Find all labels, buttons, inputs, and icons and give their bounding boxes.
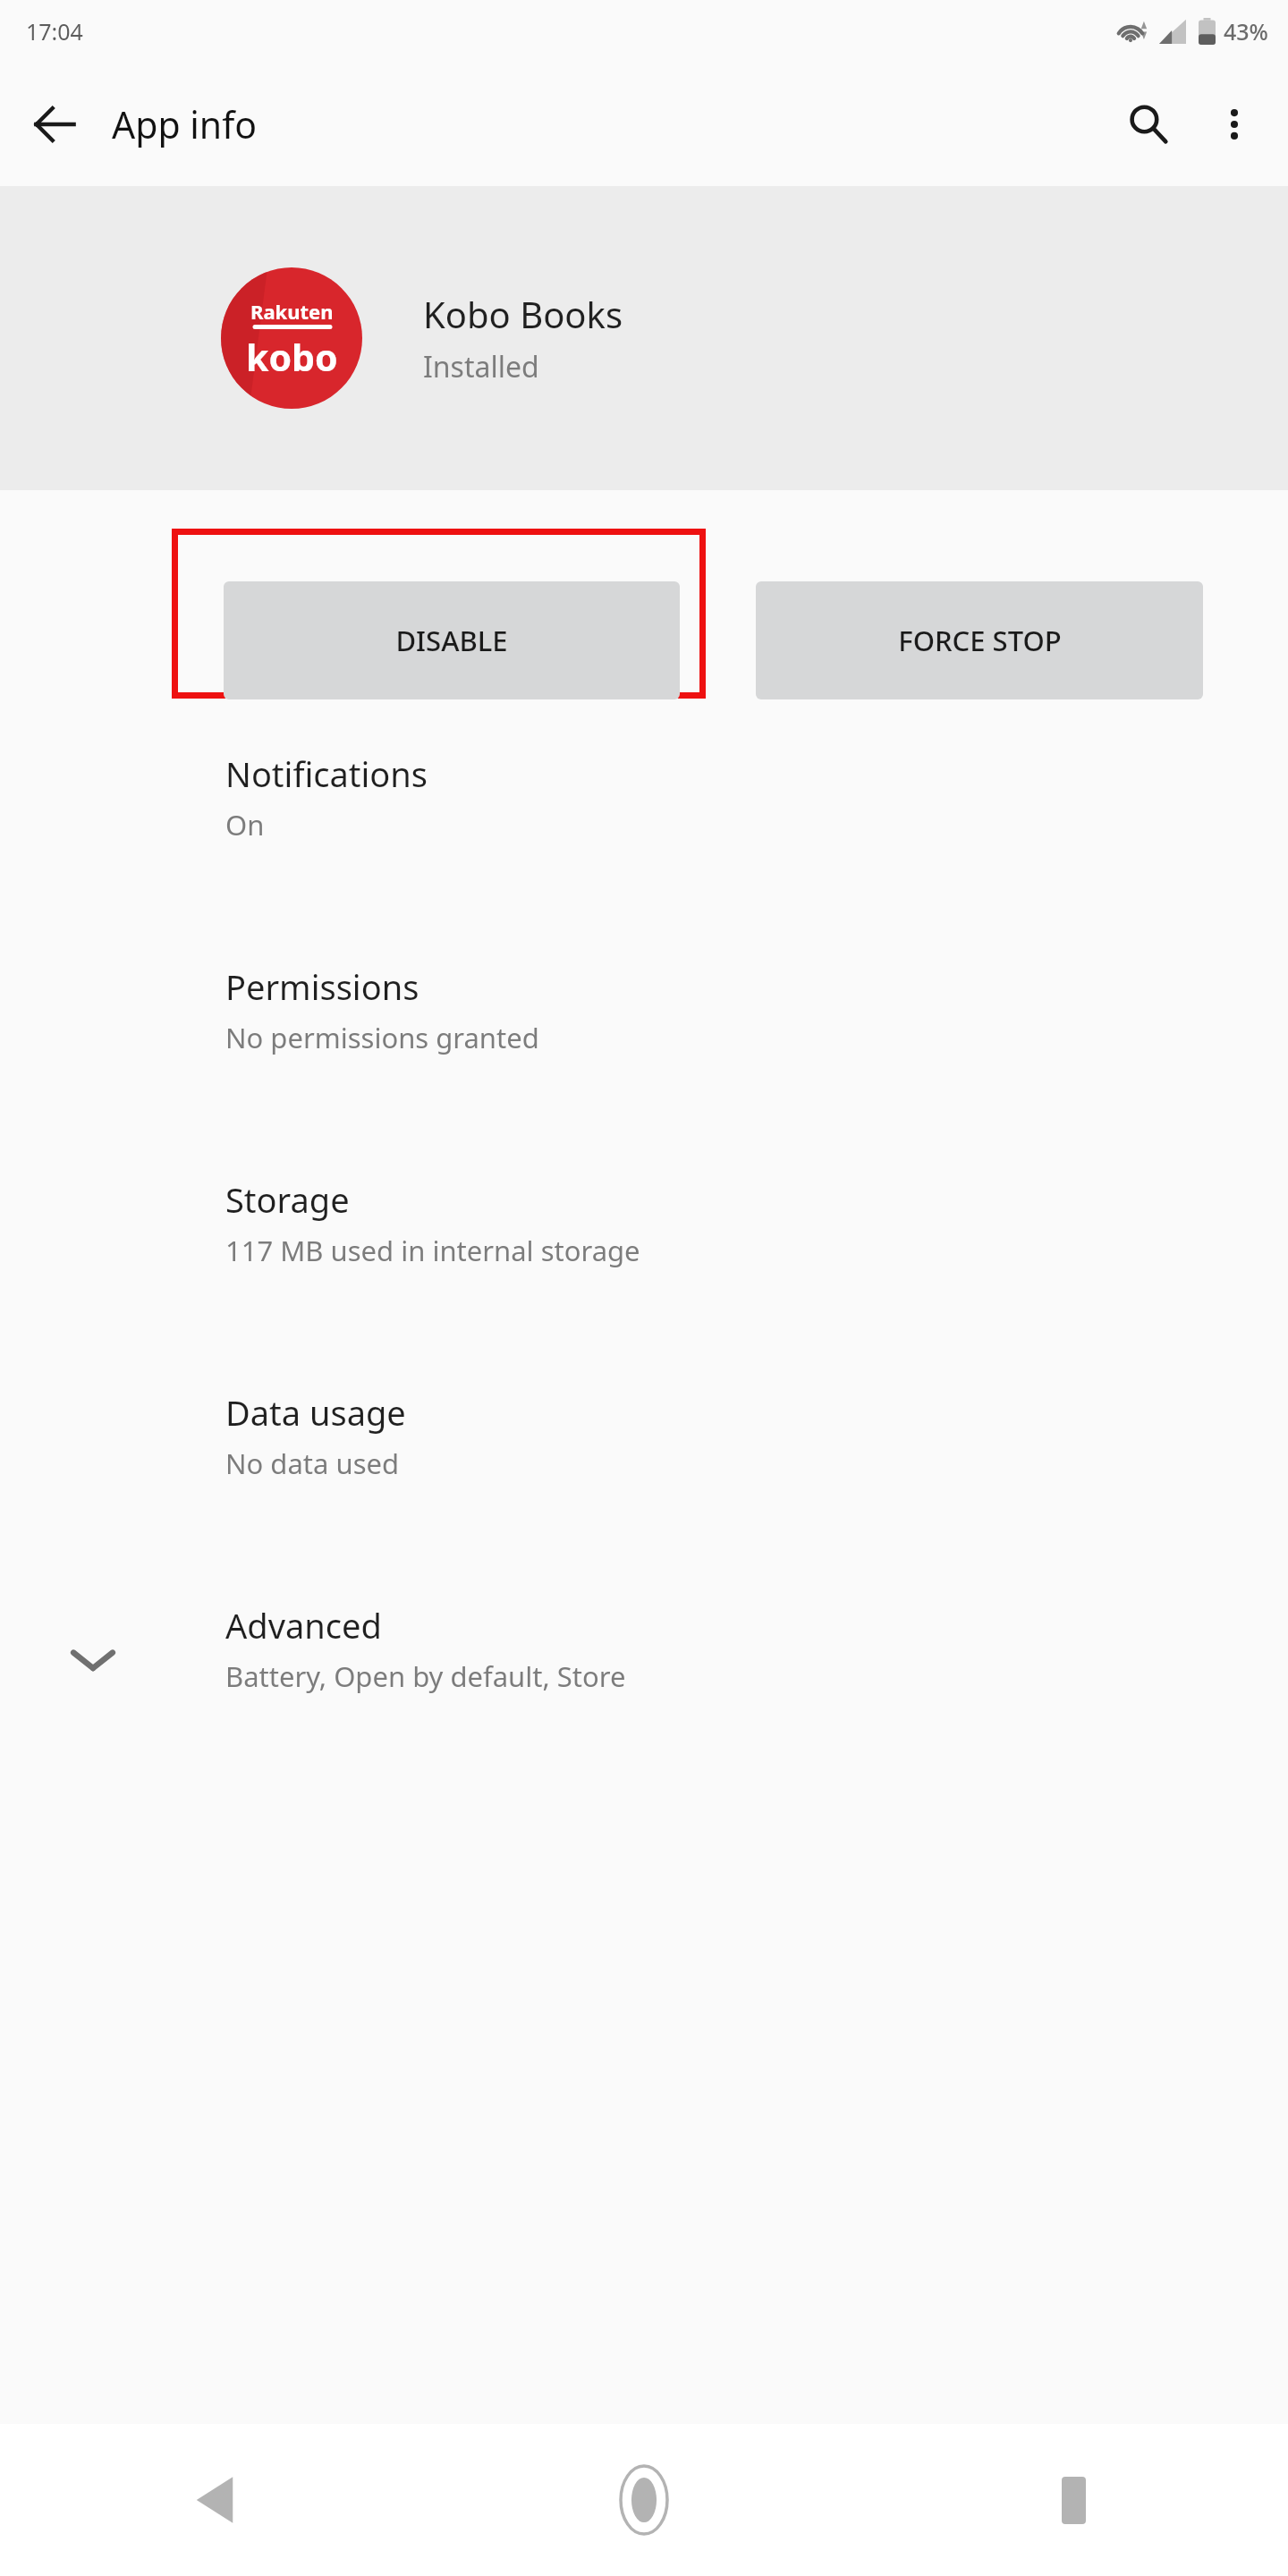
staticText: On bbox=[225, 806, 265, 843]
button[interactable]: Back bbox=[15, 85, 94, 164]
staticText: App info bbox=[112, 99, 258, 149]
staticText: Permissions bbox=[225, 963, 419, 1010]
staticText: Battery, Open by default, Store bbox=[225, 1657, 626, 1695]
staticText: DISABLE bbox=[395, 622, 508, 659]
button[interactable]: Search bbox=[1106, 81, 1191, 167]
button[interactable]: Rakuten bbox=[0, 186, 1288, 490]
button[interactable]: Data usage bbox=[0, 1357, 1288, 1570]
button[interactable]: DISABLE bbox=[224, 581, 680, 699]
staticText: Notifications bbox=[225, 750, 428, 797]
button[interactable]: Recent apps bbox=[1006, 2433, 1140, 2567]
staticText: 117 MB used in internal storage bbox=[225, 1232, 640, 1269]
button[interactable]: Home bbox=[577, 2433, 711, 2567]
staticText: Data usage bbox=[225, 1389, 406, 1436]
button[interactable]: Permissions bbox=[0, 931, 1288, 1144]
staticText: FORCE STOP bbox=[898, 622, 1062, 659]
button[interactable]: More options bbox=[1191, 81, 1277, 167]
staticText: No permissions granted bbox=[225, 1019, 539, 1056]
staticText: 17:04 bbox=[26, 16, 83, 47]
button[interactable]: Notifications bbox=[0, 718, 1288, 931]
staticText: Storage bbox=[225, 1176, 350, 1223]
staticText: No data used bbox=[225, 1445, 400, 1482]
button[interactable]: Storage bbox=[0, 1144, 1288, 1357]
staticText: 43% bbox=[1224, 16, 1268, 47]
button[interactable]: FORCE STOP bbox=[756, 581, 1203, 699]
staticText: Advanced bbox=[225, 1602, 382, 1648]
staticText: Rakuten bbox=[250, 298, 334, 325]
staticText: kobo bbox=[246, 332, 338, 382]
button[interactable]: Advanced bbox=[0, 1570, 1288, 1749]
button[interactable]: Back bbox=[148, 2433, 282, 2567]
staticText: Installed bbox=[423, 347, 539, 386]
staticText: Kobo Books bbox=[423, 290, 623, 338]
